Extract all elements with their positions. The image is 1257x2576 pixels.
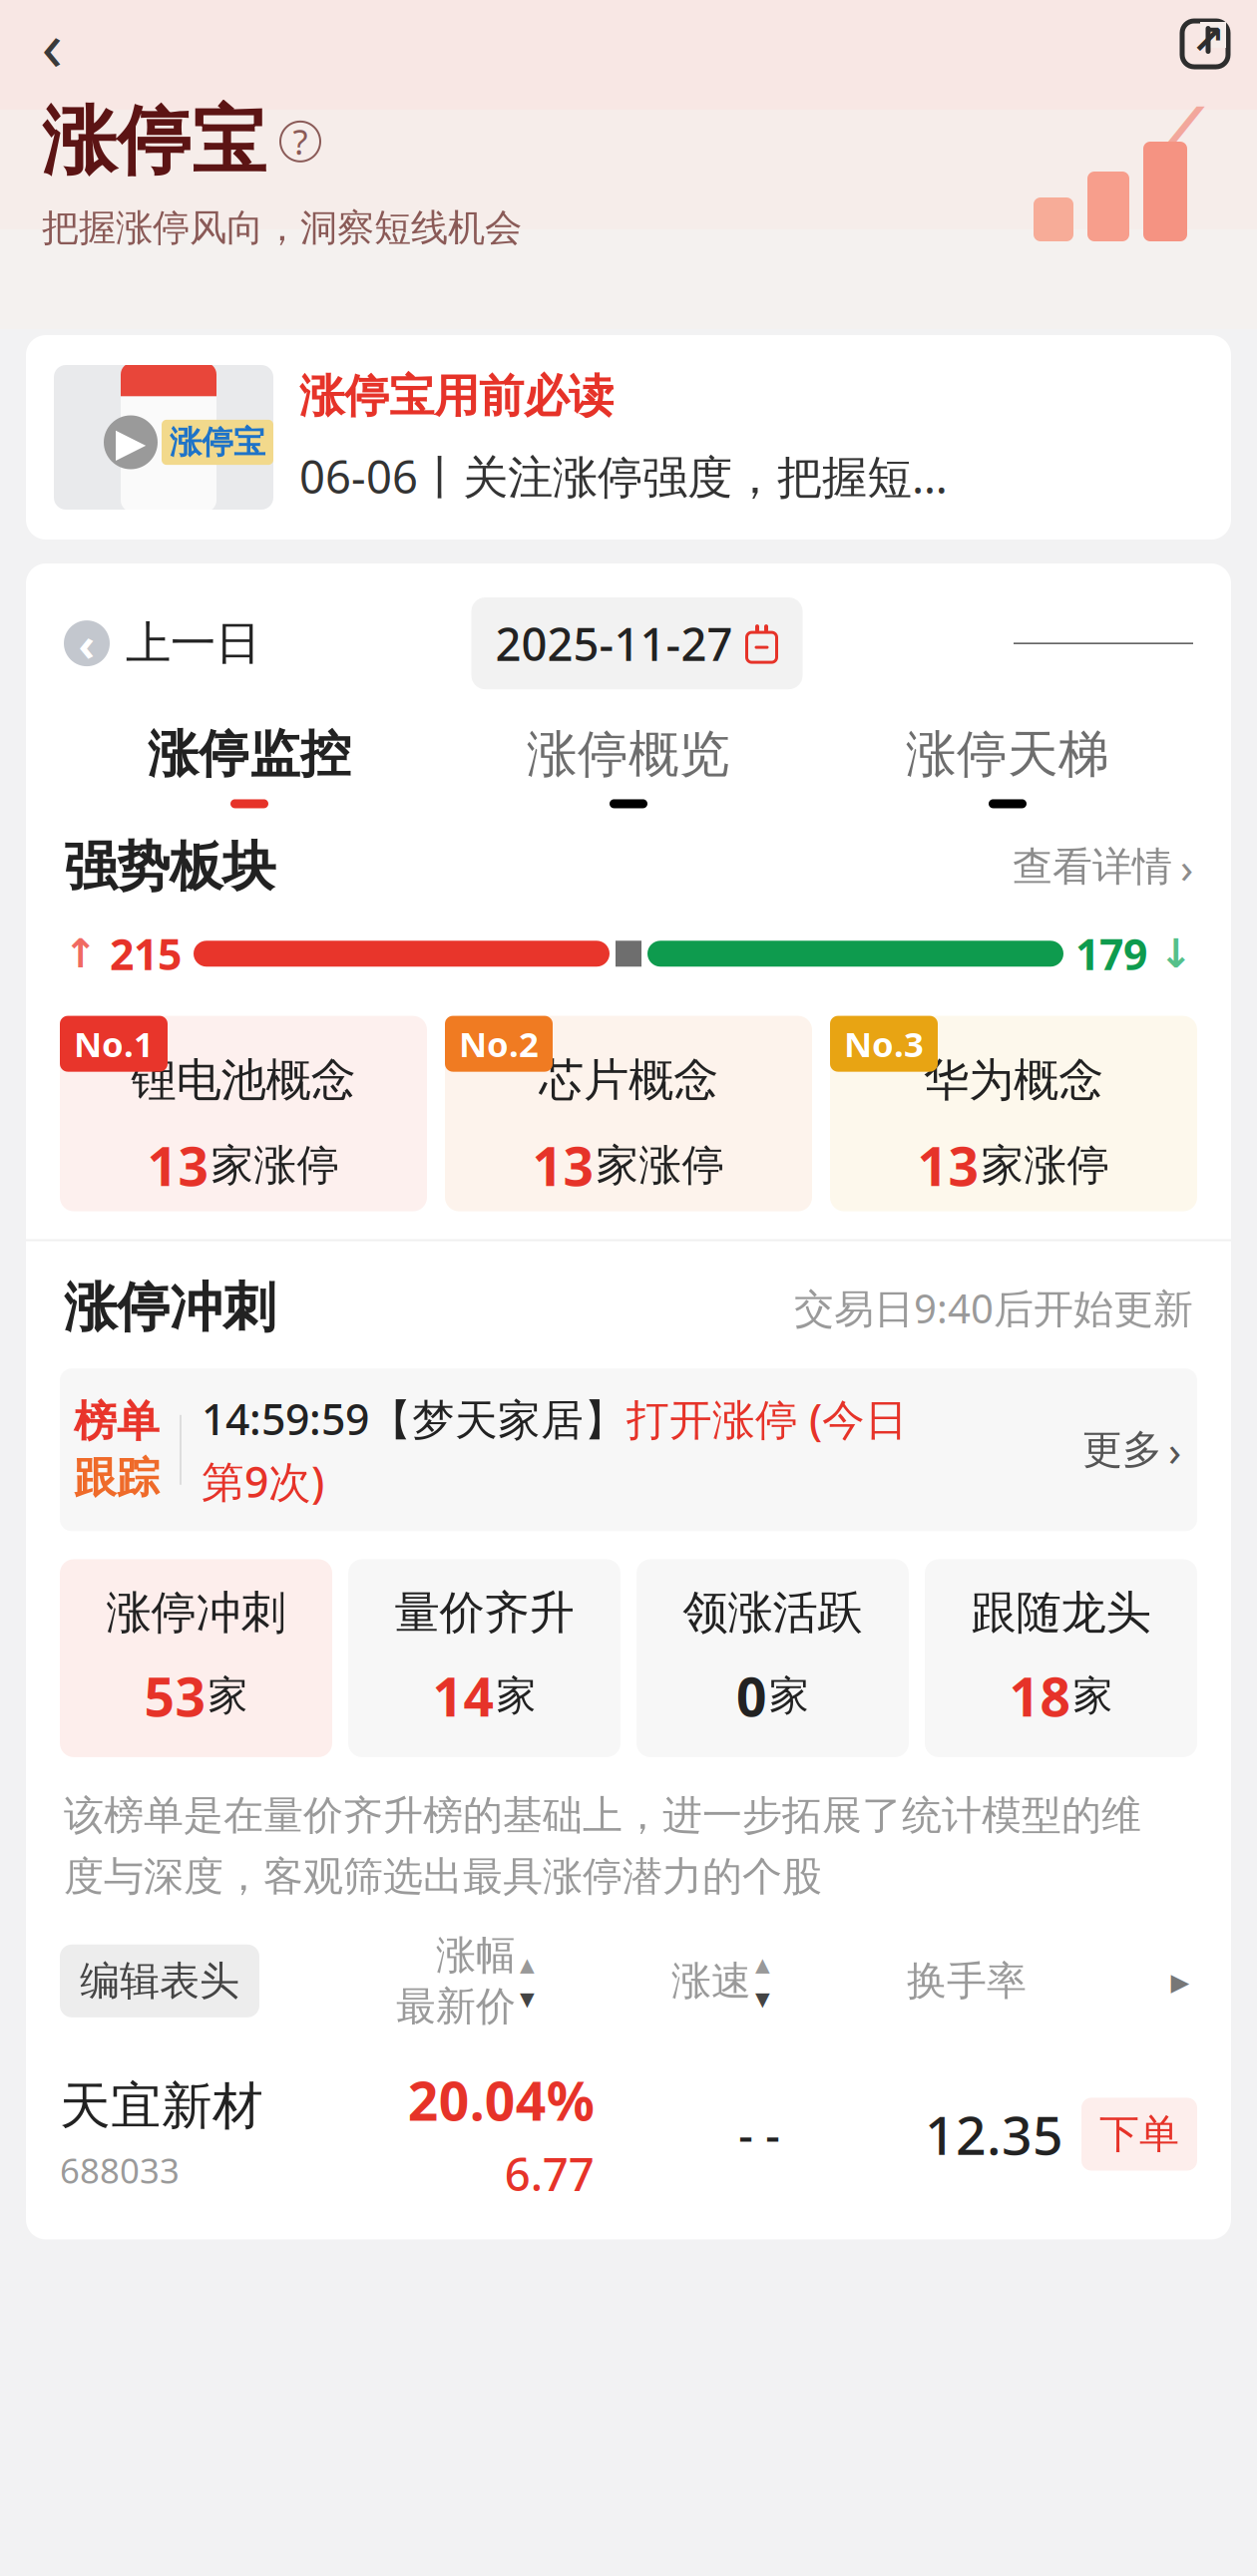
staticText: 华为概念: [924, 1052, 1103, 1108]
button[interactable]: ▶: [26, 335, 1231, 540]
staticText: 家: [1073, 1671, 1113, 1720]
button[interactable]: ‹: [64, 616, 260, 671]
staticText: 家涨停: [596, 1139, 725, 1191]
staticText: ‹: [78, 613, 95, 673]
staticText: ↗: [1191, 17, 1225, 63]
button[interactable]: Share: [1175, 14, 1235, 74]
staticText: No.2: [459, 1021, 539, 1067]
button[interactable]: 锂电池概念: [60, 1016, 427, 1211]
staticText: 编辑表头: [80, 1956, 239, 2005]
staticText: 06-06丨关注涨停强度，把握短…: [299, 446, 948, 506]
button[interactable]: 查看详情: [1013, 839, 1193, 895]
staticText: 涨停宝: [170, 423, 265, 462]
staticText: 把握涨停风向，洞察短线机会: [42, 205, 522, 251]
staticText: 涨幅: [436, 1931, 516, 1980]
staticText: 下单: [1099, 2110, 1179, 2159]
staticText: 度与深度，客观筛选出最具涨停潜力的个股: [64, 1852, 822, 1901]
staticText: 涨停监控: [148, 723, 351, 785]
staticText: 换手率: [907, 1956, 1027, 2005]
staticText: 强势板块: [64, 834, 275, 899]
staticText: 榜单: [74, 1396, 160, 1448]
staticText: No.1: [74, 1021, 154, 1067]
staticText: 涨停宝: [42, 96, 266, 187]
staticText: 量价齐升: [395, 1585, 574, 1641]
staticText: No.3: [844, 1021, 924, 1067]
staticText: 芯片概念: [539, 1052, 718, 1108]
button[interactable]: Help: [280, 122, 320, 161]
button[interactable]: 涨停监控: [60, 723, 439, 808]
staticText: 0: [736, 1661, 767, 1731]
staticText: ↑: [64, 931, 98, 976]
staticText: ‹: [41, 0, 62, 90]
staticText: 13: [147, 1130, 209, 1201]
staticText: 天宜新材: [60, 2075, 263, 2137]
staticText: 688033: [60, 2147, 180, 2193]
staticText: 14: [432, 1661, 494, 1731]
staticText: ▸: [1171, 1960, 1190, 2002]
staticText: 18: [1009, 1661, 1071, 1731]
staticText: - -: [739, 2104, 780, 2164]
button[interactable]: Back: [22, 14, 82, 74]
staticText: ▾: [520, 1981, 535, 2015]
staticText: ›: [1168, 1422, 1181, 1478]
staticText: ↓: [1159, 931, 1193, 976]
staticText: 跟踪: [74, 1452, 160, 1504]
staticText: 家涨停: [211, 1139, 340, 1191]
button[interactable]: 领涨活跃: [636, 1559, 909, 1757]
staticText: 家涨停: [981, 1139, 1110, 1191]
staticText: 最新价: [396, 1982, 516, 2031]
staticText: 交易日9:40后开始更新: [794, 1281, 1193, 1334]
button[interactable]: 涨停冲刺: [60, 1559, 332, 1757]
staticText: ›: [1180, 839, 1193, 895]
button[interactable]: 2025-11-27: [471, 597, 803, 689]
staticText: 53: [144, 1661, 206, 1731]
staticText: 家: [769, 1671, 809, 1720]
button[interactable]: 芯片概念: [445, 1016, 812, 1211]
button[interactable]: 量价齐升: [348, 1559, 621, 1757]
staticText: 涨速: [671, 1956, 751, 2005]
staticText: ▾: [755, 1981, 770, 2015]
button[interactable]: More columns: [1163, 1964, 1197, 1998]
staticText: 查看详情: [1013, 842, 1172, 891]
staticText: ▶: [115, 420, 146, 465]
staticText: 13: [917, 1130, 979, 1201]
button[interactable]: 涨幅: [396, 1931, 535, 2031]
button[interactable]: 跟随龙头: [925, 1559, 1197, 1757]
staticText: 家: [208, 1671, 248, 1720]
staticText: 13: [532, 1130, 594, 1201]
staticText: 6.77: [504, 2143, 594, 2204]
staticText: 涨停宝用前必读: [299, 369, 614, 424]
button[interactable]: 涨速: [671, 1947, 770, 2015]
staticText: 涨停冲刺: [64, 1275, 275, 1340]
staticText: 锂电池概念: [131, 1052, 356, 1108]
button[interactable]: 涨停概览: [439, 723, 818, 808]
staticText: 跟随龙头: [971, 1585, 1151, 1641]
button[interactable]: 下单: [1081, 2098, 1197, 2171]
staticText: 215: [110, 925, 182, 982]
button[interactable]: 换手率: [907, 1956, 1027, 2005]
staticText: 20.04%: [408, 2065, 594, 2135]
staticText: ▴: [755, 1947, 770, 1980]
button[interactable]: 涨停天梯: [818, 723, 1197, 808]
button[interactable]: 华为概念: [830, 1016, 1197, 1211]
staticText: 领涨活跃: [683, 1585, 862, 1641]
staticText: 第9次): [202, 1453, 324, 1509]
staticText: ?: [293, 118, 308, 164]
button[interactable]: 天宜新材: [26, 2031, 1231, 2239]
staticText: 家: [496, 1671, 536, 1720]
staticText: 涨停冲刺: [106, 1585, 286, 1641]
staticText: 打开涨停 (今日: [627, 1390, 908, 1447]
staticText: ▴: [520, 1947, 535, 1980]
staticText: 涨停天梯: [906, 723, 1109, 785]
staticText: 上一日: [126, 616, 260, 671]
button[interactable]: 编辑表头: [60, 1945, 259, 2017]
staticText: ⟋: [1145, 102, 1205, 185]
staticText: 179: [1075, 925, 1147, 982]
staticText: 14:59:59【梦天家居】: [202, 1390, 627, 1447]
staticText: 12.35: [925, 2099, 1063, 2170]
staticText: 更多: [1082, 1425, 1162, 1474]
staticText: 2025-11-27: [495, 613, 733, 673]
staticText: 涨停概览: [527, 723, 730, 785]
button[interactable]: 榜单: [60, 1368, 1197, 1531]
staticText: 该榜单是在量价齐升榜的基础上，进一步拓展了统计模型的维: [64, 1791, 1141, 1840]
